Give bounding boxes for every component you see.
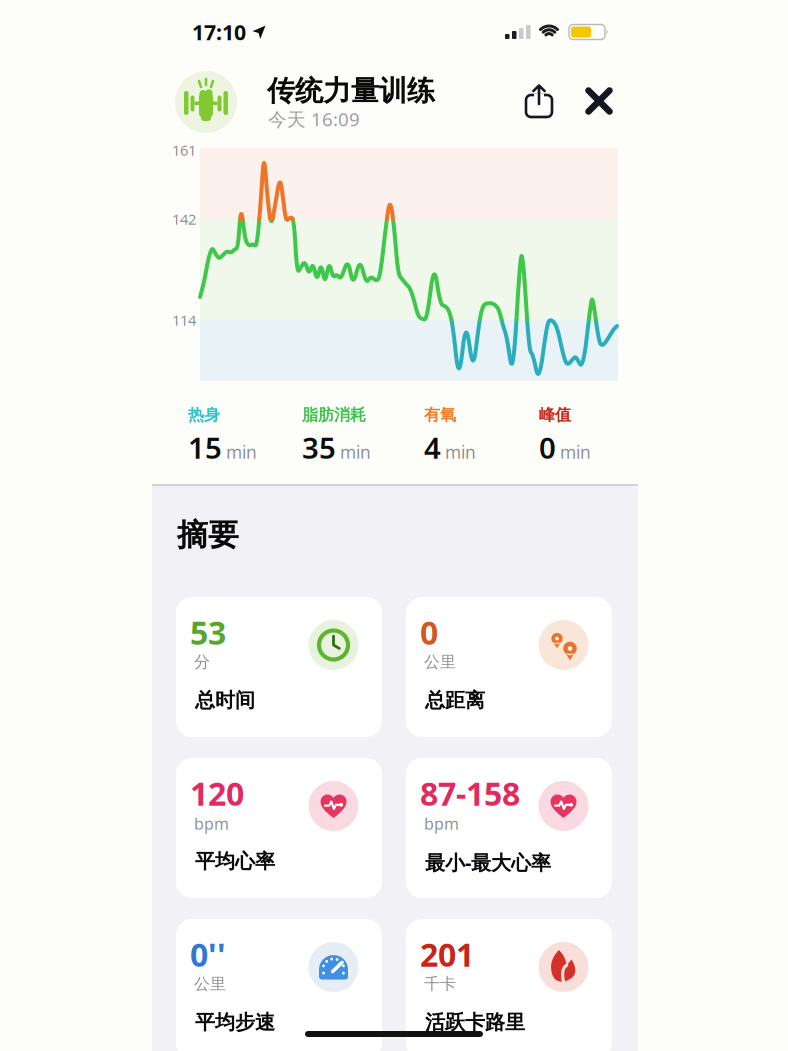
- staticText: min: [560, 440, 591, 463]
- staticText: 4: [424, 428, 441, 467]
- staticText: 热身: [188, 405, 220, 425]
- staticText: min: [340, 440, 371, 463]
- staticText: 120: [190, 772, 244, 814]
- staticText: bpm: [194, 813, 229, 834]
- staticText: 201: [420, 933, 474, 975]
- staticText: 峰值: [539, 405, 571, 425]
- button[interactable]: Share: [524, 84, 554, 118]
- staticText: 161: [172, 140, 196, 160]
- staticText: 公里: [424, 652, 456, 672]
- staticText: bpm: [424, 813, 459, 834]
- staticText: 公里: [194, 974, 226, 994]
- staticText: min: [226, 440, 257, 463]
- staticText: 摘要: [177, 516, 239, 554]
- staticText: 142: [172, 209, 196, 229]
- staticText: 总距离: [425, 688, 485, 713]
- staticText: 今天 16:09: [268, 107, 360, 131]
- staticText: 总时间: [195, 688, 255, 713]
- staticText: 35: [302, 428, 336, 467]
- staticText: 0: [539, 428, 556, 467]
- staticText: 0'': [190, 933, 226, 975]
- staticText: 平均步速: [195, 1010, 275, 1035]
- staticText: 传统力量训练: [267, 74, 435, 108]
- staticText: 最小-最大心率: [425, 849, 551, 876]
- staticText: 0: [420, 611, 438, 653]
- staticText: 15: [188, 428, 222, 467]
- staticText: 17:10: [192, 18, 246, 46]
- staticText: 千卡: [424, 974, 456, 994]
- staticText: 活跃卡路里: [425, 1010, 525, 1035]
- staticText: 87-158: [420, 772, 520, 814]
- staticText: 53: [190, 611, 226, 653]
- button[interactable]: Close: [585, 87, 613, 115]
- staticText: min: [445, 440, 476, 463]
- staticText: 114: [172, 310, 196, 330]
- staticText: 脂肪消耗: [302, 405, 366, 425]
- staticText: 分: [194, 652, 210, 672]
- staticText: 平均心率: [195, 849, 275, 874]
- staticText: 有氧: [424, 405, 456, 425]
